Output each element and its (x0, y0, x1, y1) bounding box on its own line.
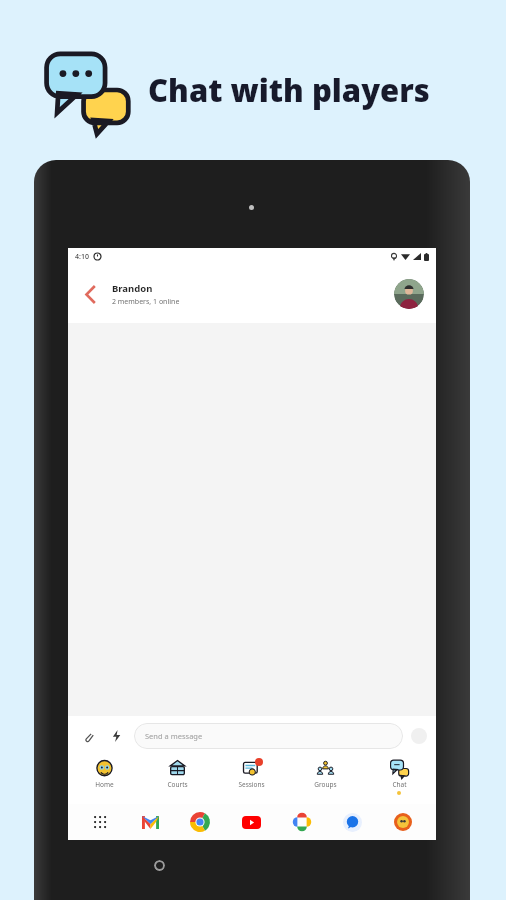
staticText: Chat with players (148, 69, 430, 111)
button[interactable]: Chrome (189, 811, 211, 833)
button[interactable]: Send a message (134, 723, 403, 749)
button[interactable]: Quick action (105, 725, 127, 747)
button[interactable]: App (392, 811, 414, 833)
staticText: Groups (314, 780, 337, 789)
staticText: Courts (167, 780, 188, 789)
button[interactable]: Chat (362, 759, 436, 804)
button[interactable]: Home (68, 759, 141, 804)
staticText: Sessions (238, 780, 265, 789)
button[interactable]: Send (411, 728, 427, 744)
button[interactable]: Gmail (139, 811, 161, 833)
staticText: Brandon (112, 282, 153, 295)
button[interactable]: All apps (90, 812, 110, 832)
staticText: 2 members, 1 online (112, 297, 180, 307)
staticText: Home (95, 780, 114, 789)
button[interactable]: Groups (288, 759, 362, 804)
button[interactable]: YouTube (240, 811, 262, 833)
staticText: Chat (392, 780, 407, 789)
button[interactable]: Group avatar (394, 279, 424, 309)
button[interactable]: Messages (341, 811, 363, 833)
staticText: 4:10 (75, 252, 89, 262)
button[interactable]: Attach file (77, 725, 99, 747)
button[interactable]: Courts (141, 759, 214, 804)
button[interactable]: Photos (291, 811, 313, 833)
button[interactable]: Sessions (214, 759, 288, 804)
staticText: Send a message (145, 731, 203, 741)
button[interactable]: Back (76, 279, 106, 309)
